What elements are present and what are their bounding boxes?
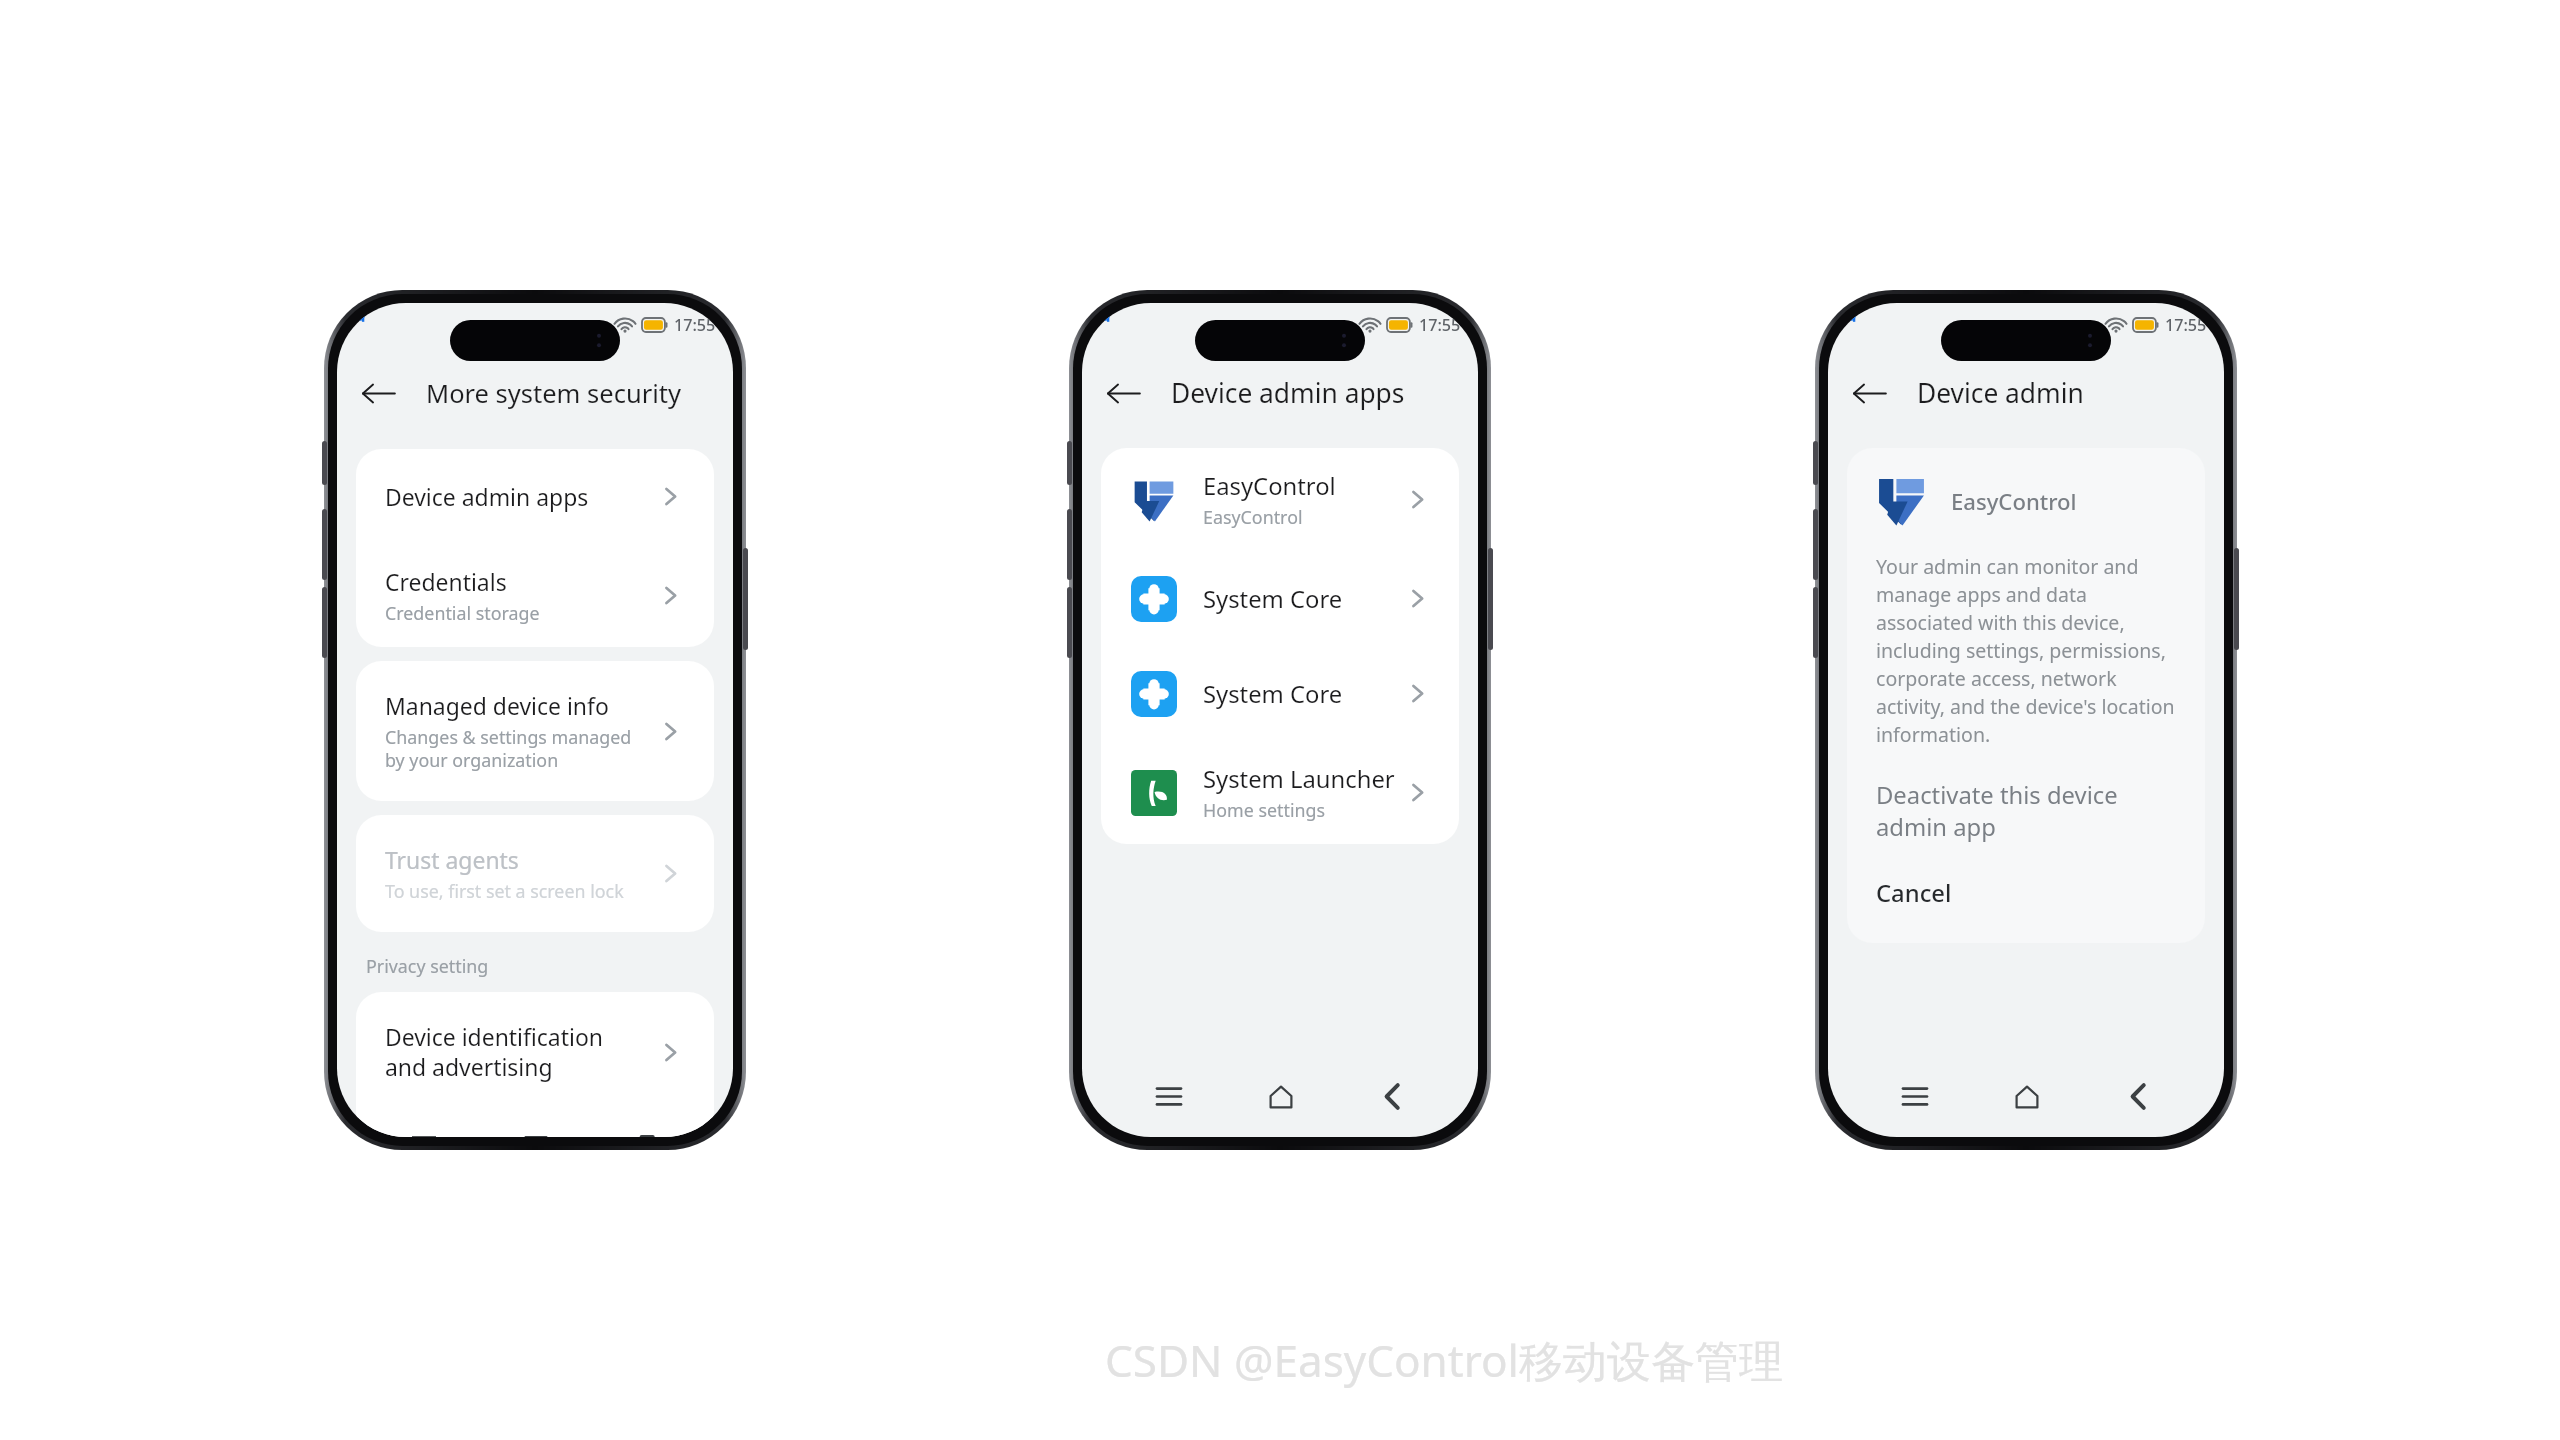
button[interactable]: Sales statistics service: [356, 1112, 714, 1137]
staticText: EasyControl: [1951, 486, 2077, 516]
staticText: Deactivate this device admin app: [1876, 779, 2176, 843]
button[interactable]: Credentials: [356, 544, 714, 647]
button[interactable]: Trust agents: [356, 815, 714, 932]
other: Back: [1850, 374, 1889, 413]
staticText: Device admin apps: [385, 481, 589, 512]
staticText: System Core: [1203, 583, 1343, 615]
staticText: Your admin can monitor and manage apps a…: [1876, 553, 2176, 748]
staticText: More system security settings: [426, 376, 733, 411]
staticText: 17:55: [1419, 314, 1461, 336]
staticText: System Launcher: [1203, 763, 1395, 795]
staticText: EasyControl: [1203, 505, 1303, 529]
staticText: Credentials: [385, 566, 507, 597]
button[interactable]: Recents: [1144, 1072, 1193, 1121]
other: Back: [359, 374, 398, 413]
other: Back: [1104, 374, 1143, 413]
button[interactable]: Home: [2002, 1072, 2051, 1121]
staticText: 17:55: [674, 314, 716, 336]
staticText: Cancel: [1876, 877, 1952, 909]
button[interactable]: Back: [1367, 1072, 1416, 1121]
staticText: Trust agents: [385, 844, 519, 875]
button[interactable]: Managed device info: [356, 661, 714, 801]
button[interactable]: System Core: [1101, 551, 1459, 646]
staticText: Device identification and advertising: [385, 1021, 646, 1083]
button[interactable]: Home: [1256, 1072, 1305, 1121]
button[interactable]: Device admin apps: [356, 449, 714, 544]
button[interactable]: Cancel: [1876, 877, 2176, 909]
staticText: Device admin: [1917, 375, 2084, 411]
button[interactable]: EasyControl: [1101, 448, 1459, 551]
staticText: Changes & settings managed by your organ…: [385, 725, 646, 772]
staticText: EasyControl: [1203, 470, 1336, 502]
staticText: Managed device info: [385, 690, 609, 721]
button[interactable]: Back: [346, 361, 411, 426]
button[interactable]: Back: [2113, 1072, 2162, 1121]
button[interactable]: Deactivate this device admin app: [1876, 779, 2176, 843]
staticText: To use, first set a screen lock: [385, 879, 624, 903]
staticText: Credential storage: [385, 601, 540, 625]
button[interactable]: Back: [1091, 361, 1156, 426]
staticText: 17:55: [2165, 314, 2207, 336]
staticText: CSDN @EasyControl移动设备管理: [1105, 1330, 1783, 1390]
staticText: Device admin apps: [1171, 375, 1405, 411]
button[interactable]: Device identification and advertising: [356, 992, 714, 1112]
button[interactable]: System Core: [1101, 646, 1459, 741]
button[interactable]: System Launcher: [1101, 741, 1459, 844]
staticText: System Core: [1203, 678, 1343, 710]
button[interactable]: Back: [1837, 361, 1902, 426]
button[interactable]: Recents: [1890, 1072, 1939, 1121]
staticText: Home settings: [1203, 798, 1326, 822]
staticText: Privacy setting: [366, 954, 489, 978]
